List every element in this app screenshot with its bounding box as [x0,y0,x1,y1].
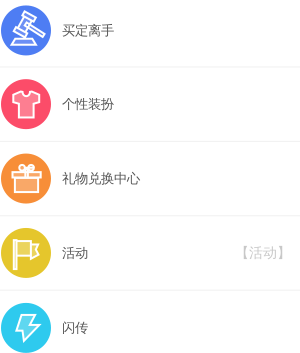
staticText: 闪传 [62,319,88,336]
button[interactable]: 个性装扮 [0,67,300,142]
staticText: 活动 [62,245,88,261]
staticText: 礼物兑换中心 [62,170,140,187]
button[interactable]: 活动 [0,216,300,291]
button[interactable]: 礼物兑换中心 [0,142,300,216]
staticText: 买定离手 [62,22,114,39]
button[interactable]: 闪传 [0,291,300,353]
button[interactable]: 买定离手 [0,0,300,67]
staticText: 【活动】 [235,244,291,262]
staticText: 个性装扮 [62,96,114,113]
